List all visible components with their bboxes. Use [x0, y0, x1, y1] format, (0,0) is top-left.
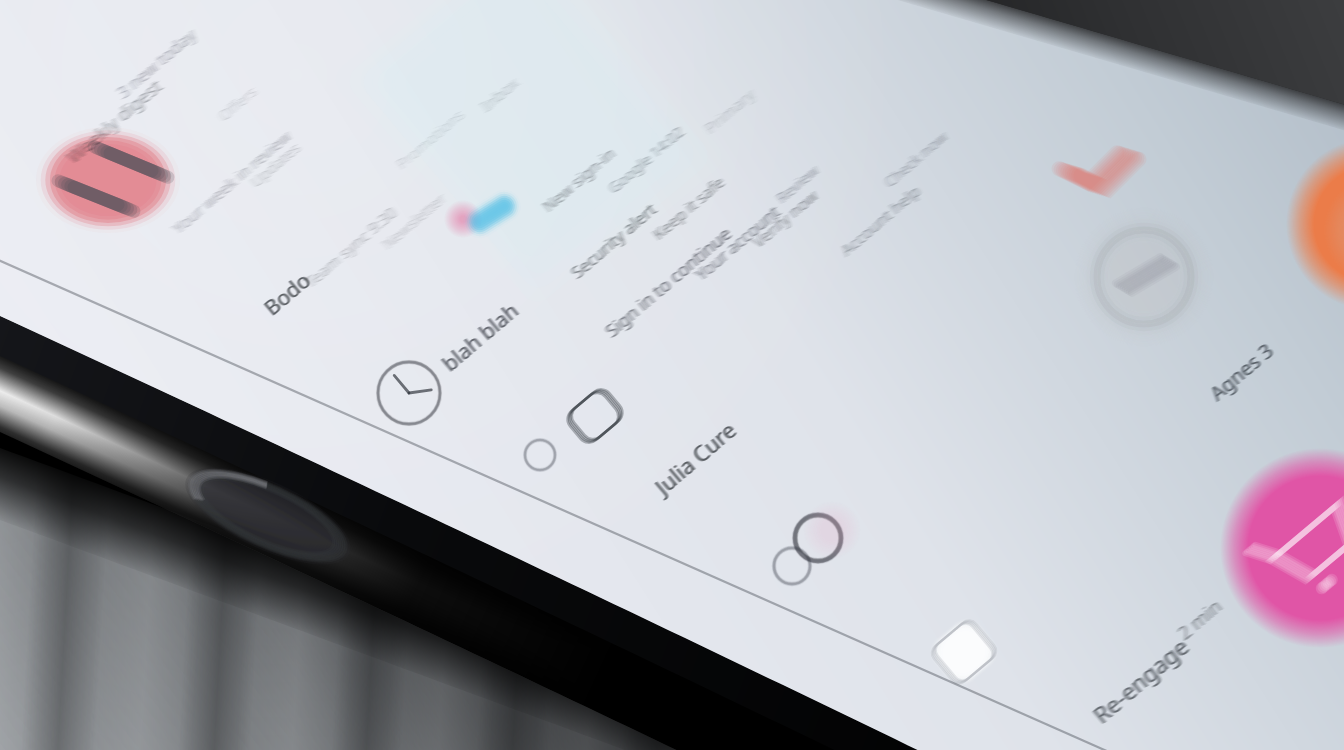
button[interactable]: Accounts — [770, 500, 880, 600]
button[interactable]: Agnes 3 — [1000, 210, 1344, 430]
button[interactable]: Saved — [505, 400, 585, 480]
button[interactable]: Julia Cure — [560, 360, 1260, 550]
button[interactable]: Open conversation with Agnes — [1090, 220, 1205, 335]
button[interactable]: Compose — [1230, 460, 1344, 640]
button[interactable]: Recent — [370, 355, 460, 445]
button[interactable]: Security alert - Sign in to continue — [330, 150, 1030, 350]
button[interactable]: Bodo - Weekly digest — [20, 90, 640, 270]
button[interactable]: Archive — [925, 610, 1015, 700]
button[interactable]: Labels — [560, 380, 650, 460]
button[interactable]: Profile picture — [45, 130, 175, 230]
